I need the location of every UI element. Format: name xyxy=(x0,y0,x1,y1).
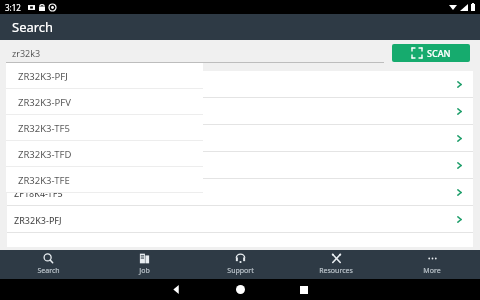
button[interactable]: ZR32K3-PFV xyxy=(6,89,203,115)
button[interactable]: SCAN xyxy=(392,44,470,62)
staticText: ZR32K3-TFD xyxy=(18,148,72,161)
staticText: SCAN xyxy=(427,47,451,59)
button[interactable]: zr32k3 xyxy=(6,43,384,63)
staticText: ZF18K4-TF5 xyxy=(14,187,63,199)
other: Home xyxy=(236,285,245,294)
other: More xyxy=(427,253,438,264)
button[interactable]: More xyxy=(384,250,480,279)
staticText: ZR32K3-TF5 xyxy=(18,122,70,135)
button[interactable] xyxy=(7,98,473,125)
staticText: ZR32K3-PFV xyxy=(18,96,71,109)
other: Job xyxy=(139,253,150,264)
staticText: ZR32K3-PFJ xyxy=(18,70,68,83)
staticText: Resources xyxy=(319,266,353,276)
button[interactable] xyxy=(7,152,473,179)
button[interactable]: Search xyxy=(0,250,96,279)
button[interactable]: ZR32K3-TFD xyxy=(6,141,203,167)
button[interactable]: Job xyxy=(96,250,192,279)
staticText: ZR32K3-PFJ xyxy=(14,214,62,226)
staticText: 3:12 xyxy=(5,2,21,13)
button[interactable]: ZF18K4-TF5 xyxy=(7,179,473,206)
button[interactable] xyxy=(7,125,473,152)
staticText: Job xyxy=(139,266,150,276)
staticText: Support xyxy=(227,266,254,276)
other: Resources xyxy=(331,253,342,264)
staticText: Search xyxy=(12,18,54,36)
button[interactable]: Support xyxy=(192,250,288,279)
staticText: ZR32K3-TFE xyxy=(18,174,70,187)
other: Support xyxy=(235,253,246,264)
button[interactable]: ZR32K3-TF5 xyxy=(6,115,203,141)
button[interactable]: ZR32K3-PFJ xyxy=(6,63,203,89)
other: Search xyxy=(43,253,54,264)
other: Back xyxy=(172,285,181,294)
button[interactable]: ZR32K3-PFJ xyxy=(7,206,473,233)
button[interactable]: Resources xyxy=(288,250,384,279)
staticText: zr32k3 xyxy=(12,47,41,59)
button[interactable] xyxy=(7,71,473,98)
staticText: More xyxy=(423,266,441,276)
button[interactable]: ZR32K3-TFE xyxy=(6,167,203,193)
staticText: Search xyxy=(37,266,60,276)
